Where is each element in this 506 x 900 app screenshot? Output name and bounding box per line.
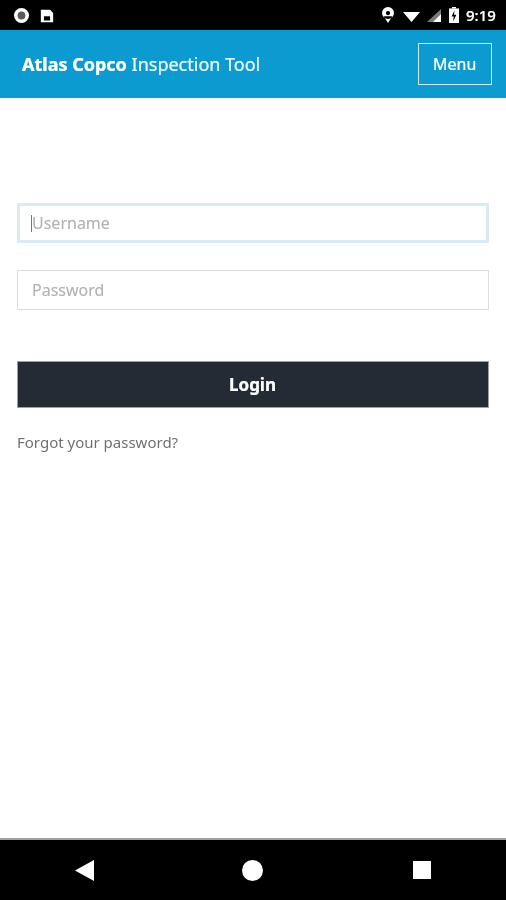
staticText: Menu xyxy=(433,53,477,75)
button[interactable]: Menu xyxy=(418,43,492,85)
button[interactable]: Forgot your password? xyxy=(17,430,179,454)
staticText: 9:19 xyxy=(466,5,496,25)
staticText: Forgot your password? xyxy=(17,432,179,452)
staticText: Login xyxy=(229,373,277,396)
staticText: Atlas Copco Inspection Tool xyxy=(22,52,261,77)
button[interactable]: Username xyxy=(17,203,489,243)
button[interactable]: Home xyxy=(168,840,337,900)
button[interactable]: Recent apps xyxy=(337,840,506,900)
staticText: Password xyxy=(32,279,105,301)
button[interactable]: Login xyxy=(17,361,489,408)
button[interactable]: Back xyxy=(0,840,168,900)
staticText: Username xyxy=(32,212,110,234)
button[interactable]: Password xyxy=(17,270,489,310)
